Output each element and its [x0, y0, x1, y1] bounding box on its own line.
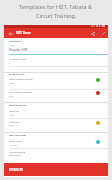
staticText: Timer Music	[9, 140, 23, 143]
staticText: Regular HIIT	[9, 48, 28, 52]
staticText: Default beeps	[9, 154, 22, 157]
staticText: Circuit Training.	[36, 12, 77, 19]
button[interactable]	[4, 139, 108, 149]
staticText: No Music	[9, 144, 18, 147]
staticText: High intensity interval	[9, 78, 33, 81]
staticText: Cooldown	[9, 121, 20, 124]
staticText: 00:30	[9, 82, 14, 85]
button[interactable]	[4, 119, 108, 132]
button[interactable]	[4, 109, 108, 119]
staticText: 8	[9, 62, 11, 65]
staticText: Round intervals	[9, 73, 25, 76]
staticText: Name	[9, 44, 15, 47]
button[interactable]: Edit	[98, 29, 107, 38]
button[interactable]	[4, 56, 108, 66]
staticText: Music and Sounds	[9, 134, 27, 137]
staticText: ADVANCED	[9, 168, 24, 172]
staticText: Sound Scheme	[9, 151, 26, 154]
staticText: Number of sets	[9, 58, 26, 61]
button[interactable]	[4, 77, 108, 89]
staticText: Warm up	[9, 110, 19, 113]
staticText: 00:30	[9, 95, 14, 98]
staticText: 00:00	[9, 114, 14, 117]
staticText: Low intensity interval	[9, 91, 32, 94]
button[interactable]	[4, 149, 108, 162]
staticText: Timer details	[9, 40, 22, 43]
button[interactable]	[4, 90, 108, 102]
staticText: HIIT Timer	[16, 31, 31, 35]
staticText: 00:00	[9, 124, 14, 127]
staticText: Templates for HIIT, Tabata &	[19, 3, 93, 10]
button[interactable]: Share	[88, 29, 97, 38]
button[interactable]	[4, 44, 108, 56]
button[interactable]: ADVANCED	[4, 163, 108, 176]
staticText: Optional intervals	[9, 104, 27, 107]
button[interactable]: Back	[6, 29, 15, 38]
